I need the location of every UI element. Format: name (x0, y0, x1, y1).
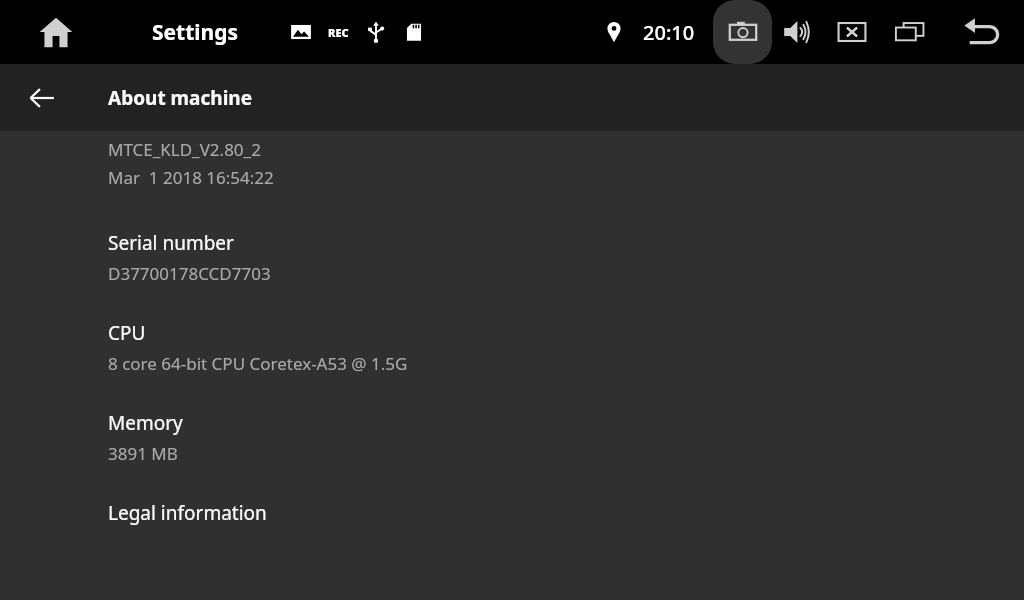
button[interactable]: Volume (772, 0, 824, 64)
staticText: Mar 1 2018 16:54:22 (108, 166, 274, 189)
button[interactable]: Location (599, 17, 629, 47)
staticText: Memory (108, 410, 183, 436)
staticText: D37700178CCD7703 (108, 262, 271, 285)
button[interactable]: Screenshot (713, 0, 772, 64)
staticText: Legal information (108, 500, 267, 526)
button[interactable]: Back (940, 0, 1024, 64)
staticText: REC (328, 25, 349, 40)
button[interactable]: Close (824, 0, 880, 64)
staticText: 20:10 (643, 19, 695, 46)
staticText: Serial number (108, 230, 234, 256)
staticText: About machine (108, 85, 253, 111)
button[interactable]: CPU (0, 320, 1024, 375)
button[interactable]: Serial number (0, 230, 1024, 285)
button[interactable]: Legal information (0, 500, 1024, 526)
staticText: CPU (108, 320, 146, 346)
staticText: Settings (152, 18, 239, 47)
button[interactable]: MTCE_KLD_V2.80_2 (0, 131, 1024, 195)
staticText: MTCE_KLD_V2.80_2 (108, 138, 261, 161)
button[interactable]: Memory (0, 410, 1024, 465)
button[interactable]: Recent apps (880, 0, 940, 64)
button[interactable]: Home (28, 4, 84, 60)
staticText: 8 core 64-bit CPU Coretex-A53 @ 1.5G (108, 352, 408, 375)
staticText: 3891 MB (108, 442, 178, 465)
button[interactable]: Navigate up (18, 74, 66, 122)
